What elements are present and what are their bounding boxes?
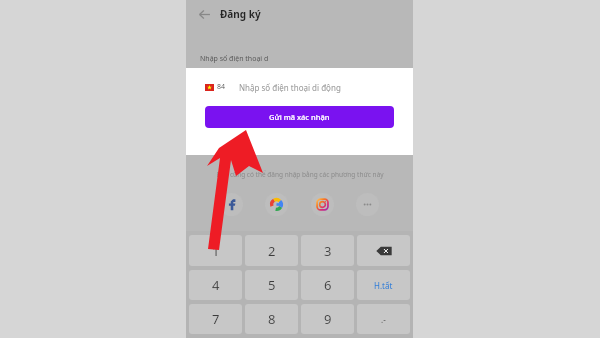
button[interactable]: Back bbox=[194, 4, 214, 24]
button[interactable]: H.tất bbox=[357, 270, 410, 300]
button[interactable]: 2 bbox=[245, 235, 298, 266]
button[interactable]: Google bbox=[265, 193, 288, 216]
button[interactable]: Instagram bbox=[311, 193, 334, 216]
staticText: 9 bbox=[324, 310, 332, 328]
button[interactable]: 6 bbox=[301, 270, 354, 300]
button[interactable]: 5 bbox=[245, 270, 298, 300]
staticText: 4 bbox=[212, 276, 220, 294]
staticText: H.tất bbox=[374, 280, 393, 291]
button[interactable]: 1 bbox=[189, 235, 242, 266]
staticText: Gửi mã xác nhận bbox=[269, 112, 330, 122]
button[interactable]: 3 bbox=[301, 235, 354, 266]
button[interactable]: Gửi mã xác nhận bbox=[205, 106, 394, 128]
staticText: 1 bbox=[212, 242, 220, 260]
staticText: 6 bbox=[324, 276, 332, 294]
other: Delete bbox=[376, 246, 392, 256]
button[interactable]: Delete bbox=[357, 235, 410, 266]
staticText: Đăng ký bbox=[220, 7, 261, 21]
staticText: 7 bbox=[212, 310, 220, 328]
staticText: Nhập số điện thoại di động bbox=[239, 82, 341, 93]
button[interactable]: More options bbox=[356, 193, 379, 216]
staticText: .- bbox=[381, 314, 386, 325]
staticText: 8 bbox=[268, 310, 276, 328]
staticText: Bạn cũng có thể đăng nhập bằng các phươn… bbox=[216, 170, 384, 179]
staticText: 5 bbox=[268, 276, 276, 294]
staticText: 84 bbox=[217, 82, 226, 92]
button[interactable]: Facebook bbox=[220, 193, 243, 216]
staticText: 3 bbox=[324, 242, 332, 260]
staticText: Nhập số điện thoại d bbox=[200, 54, 269, 64]
button[interactable]: 7 bbox=[189, 304, 242, 334]
button[interactable]: 8 bbox=[245, 304, 298, 334]
staticText: 2 bbox=[268, 242, 276, 260]
button[interactable]: 84 bbox=[205, 68, 394, 106]
button[interactable]: 4 bbox=[189, 270, 242, 300]
button[interactable]: 9 bbox=[301, 304, 354, 334]
